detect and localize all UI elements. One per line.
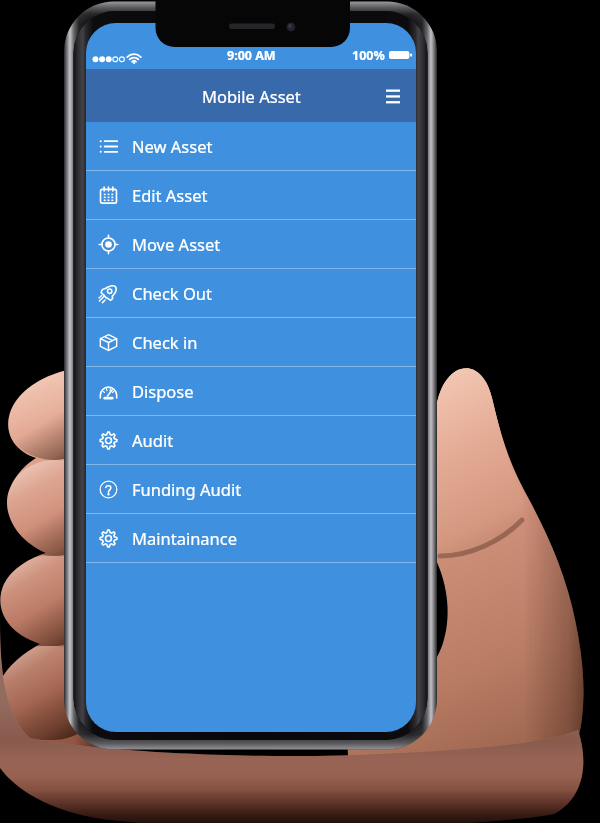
button[interactable]: Mobile Asset <box>86 69 416 122</box>
staticText: Audit <box>132 429 174 451</box>
button[interactable]: Move Asset <box>86 220 416 269</box>
button[interactable]: Maintainance <box>86 514 416 563</box>
button[interactable]: Audit <box>86 416 416 465</box>
button[interactable]: Menu <box>375 78 411 114</box>
button[interactable]: Funding Audit <box>86 465 416 514</box>
staticText: Edit Asset <box>132 184 208 206</box>
staticText: Mobile Asset <box>202 85 301 107</box>
staticText: New Asset <box>132 135 213 157</box>
staticText: Dispose <box>132 380 194 402</box>
button[interactable]: Edit Asset <box>86 171 416 220</box>
staticText: 9:00 AM <box>227 47 276 64</box>
staticText: Move Asset <box>132 233 221 255</box>
button[interactable]: Check Out <box>86 269 416 318</box>
staticText: Check in <box>132 331 198 353</box>
staticText: Funding Audit <box>132 478 242 500</box>
button[interactable]: Check in <box>86 318 416 367</box>
staticText: Maintainance <box>132 527 238 549</box>
button[interactable]: Dispose <box>86 367 416 416</box>
staticText: Check Out <box>132 282 212 304</box>
staticText: 100% <box>352 47 385 64</box>
button[interactable]: New Asset <box>86 122 416 171</box>
